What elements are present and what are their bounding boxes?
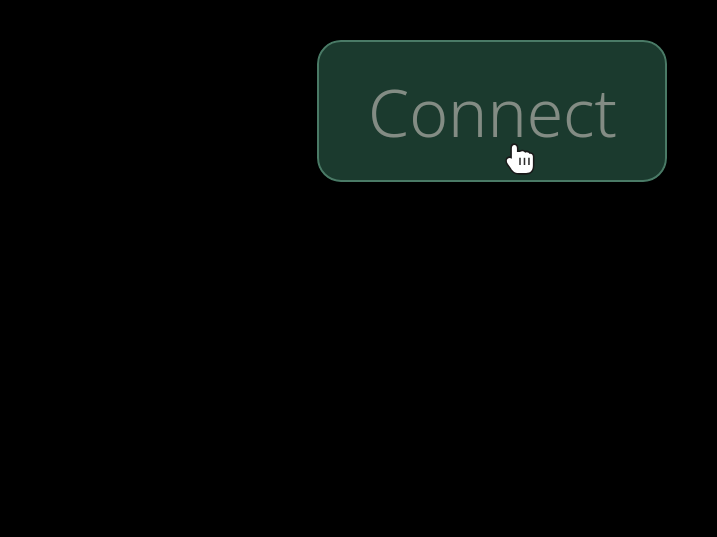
- staticText: Connect: [368, 66, 617, 156]
- button[interactable]: Connect: [317, 40, 667, 182]
